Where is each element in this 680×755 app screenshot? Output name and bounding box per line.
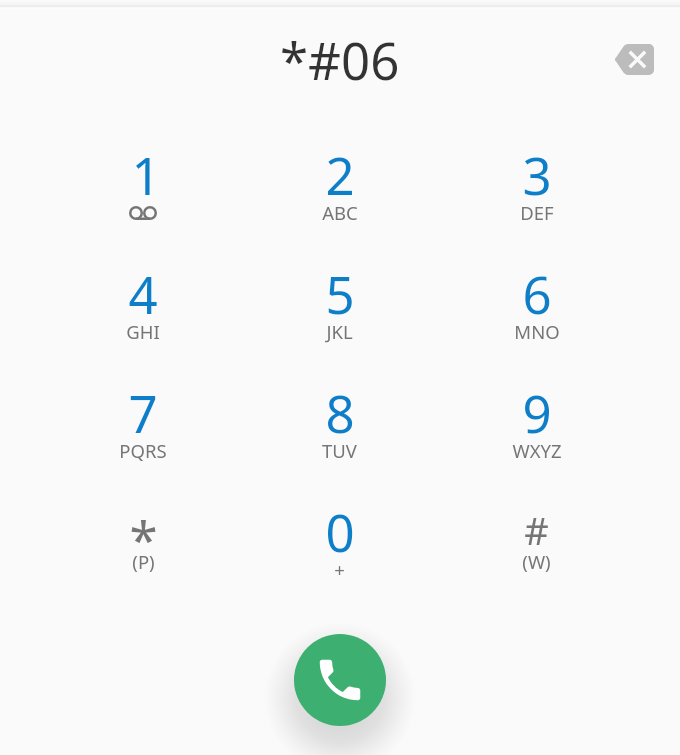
button[interactable]: 0 <box>241 473 438 592</box>
button[interactable]: 1 <box>45 116 241 235</box>
staticText: + <box>334 557 345 582</box>
staticText: # <box>524 504 549 556</box>
staticText: 0 <box>325 497 355 566</box>
button[interactable]: 6 <box>438 235 635 354</box>
staticText: 7 <box>128 378 158 447</box>
staticText: 5 <box>325 259 355 328</box>
staticText: * <box>129 504 158 573</box>
staticText: TUV <box>322 438 357 463</box>
staticText: DEF <box>520 200 554 225</box>
staticText: 2 <box>325 140 355 209</box>
button[interactable]: # <box>438 473 635 592</box>
staticText: PQRS <box>119 438 167 463</box>
staticText: 4 <box>128 259 158 328</box>
staticText: (P) <box>132 549 155 574</box>
staticText: 3 <box>522 140 552 209</box>
button[interactable]: 7 <box>45 354 241 473</box>
button[interactable]: 3 <box>438 116 635 235</box>
button[interactable]: 8 <box>241 354 438 473</box>
staticText: 1 <box>131 140 161 209</box>
button[interactable]: Backspace <box>610 35 658 83</box>
staticText: WXYZ <box>512 438 562 463</box>
staticText: *#06 <box>280 25 400 94</box>
staticText: GHI <box>126 319 160 344</box>
staticText: 6 <box>522 259 552 328</box>
button[interactable]: * <box>45 473 241 592</box>
button[interactable]: Call <box>294 634 386 726</box>
staticText: 8 <box>325 378 355 447</box>
staticText: (W) <box>522 549 551 574</box>
button[interactable]: 4 <box>45 235 241 354</box>
button[interactable]: 9 <box>438 354 635 473</box>
staticText: 9 <box>522 378 552 447</box>
staticText: MNO <box>514 319 560 344</box>
button[interactable]: 5 <box>241 235 438 354</box>
staticText: JKL <box>326 319 353 344</box>
staticText: ABC <box>322 200 358 225</box>
button[interactable]: 2 <box>241 116 438 235</box>
